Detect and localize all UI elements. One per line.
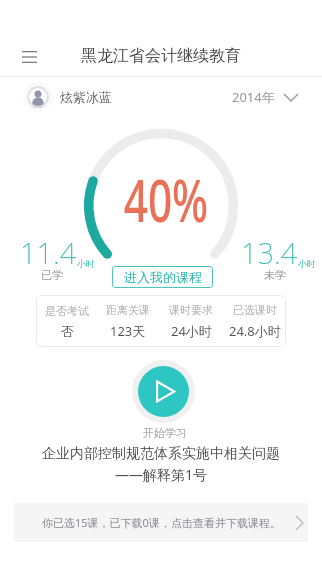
staticText: 距离关课 <box>106 303 150 317</box>
staticText: 2014年 <box>232 88 275 106</box>
button[interactable]: 开始学习 <box>138 366 189 417</box>
staticText: 课时要求 <box>169 303 213 317</box>
staticText: 进入我的课程 <box>124 269 202 285</box>
staticText: 否 <box>61 323 74 339</box>
staticText: 24小时 <box>171 322 212 340</box>
staticText: 123天 <box>110 322 146 340</box>
button[interactable]: Menu <box>13 41 45 73</box>
staticText: 40% <box>124 160 208 239</box>
staticText: 未学 <box>264 268 286 282</box>
staticText: 已选课时 <box>233 303 277 317</box>
staticText: ——解释第1号 <box>115 465 208 484</box>
button[interactable]: 2014年 <box>232 88 298 106</box>
staticText: 企业内部控制规范体系实施中相关问题 <box>42 445 280 463</box>
staticText: 11.4 <box>20 233 77 272</box>
staticText: 开始学习 <box>143 426 187 440</box>
staticText: 小时 <box>298 258 316 269</box>
staticText: 已学 <box>41 268 63 282</box>
button[interactable]: 是否考试 <box>36 295 286 347</box>
button[interactable]: 企业内部控制规范体系实施中相关问题 <box>0 445 322 484</box>
button[interactable]: 进入我的课程 <box>112 266 213 288</box>
staticText: 炫紫冰蓝 <box>60 89 112 105</box>
staticText: 黑龙江省会计继续教育 <box>81 46 241 66</box>
staticText: 是否考试 <box>45 304 89 318</box>
button[interactable]: 你已选15课，已下载0课，点击查看并下载课程。 <box>14 503 308 542</box>
staticText: 13.4 <box>241 233 298 272</box>
staticText: 你已选15课，已下载0课，点击查看并下载课程。 <box>42 515 281 530</box>
button[interactable]: 炫紫冰蓝 <box>0 77 322 117</box>
staticText: 24.8小时 <box>229 322 281 340</box>
staticText: 小时 <box>77 258 95 269</box>
